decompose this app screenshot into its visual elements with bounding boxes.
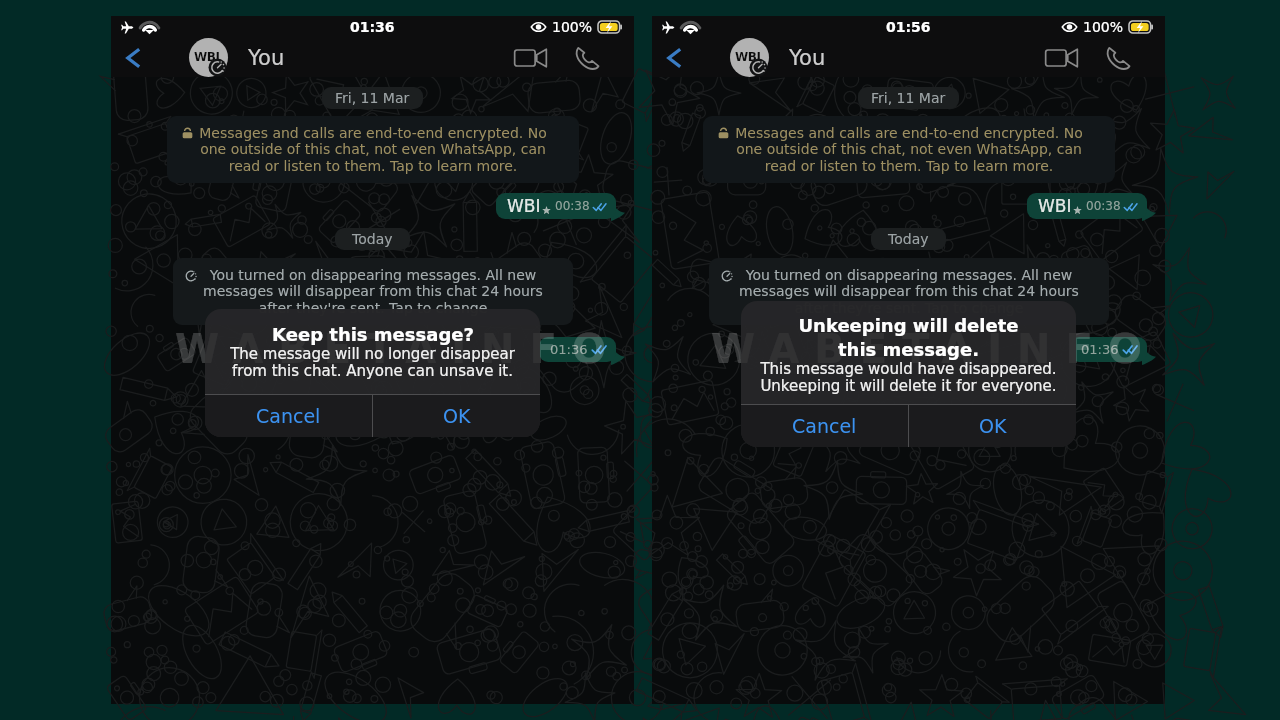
staticText: 01:36 <box>1081 342 1119 357</box>
staticText: Fri, 11 Mar <box>335 90 410 106</box>
staticText: WABETAINFO <box>175 326 621 373</box>
staticText: Messages and calls are end-to-end encryp… <box>199 125 547 174</box>
staticText: WBI <box>1038 196 1072 216</box>
staticText: This message would have disappeared. Unk… <box>760 360 1057 394</box>
staticText: 100% <box>552 19 593 35</box>
staticText: 00:38 <box>555 199 590 213</box>
button[interactable]: Cancel <box>741 405 908 447</box>
staticText: Cancel <box>256 405 321 427</box>
staticText: Today <box>888 231 929 247</box>
staticText: OK <box>443 405 471 427</box>
staticText: You <box>789 46 826 70</box>
staticText: 00:38 <box>1086 199 1121 213</box>
staticText: 100% <box>1083 19 1124 35</box>
staticText: Today <box>352 231 393 247</box>
staticText: Keep this message? <box>272 324 474 345</box>
staticText: Fri, 11 Mar <box>871 90 946 106</box>
staticText: WBI <box>507 196 541 216</box>
staticText: You turned on disappearing messages. All… <box>739 267 1079 316</box>
staticText: Messages and calls are end-to-end encryp… <box>735 125 1083 174</box>
button[interactable]: Video call <box>1033 38 1089 77</box>
staticText: The message will no longer disappear fro… <box>230 345 515 379</box>
button[interactable]: Back <box>652 38 697 77</box>
staticText: WABETAINFO <box>711 326 1157 373</box>
staticText: WABETAINFO <box>175 326 621 373</box>
staticText: 01:56 <box>886 19 931 35</box>
staticText: Cancel <box>792 415 857 437</box>
button[interactable]: Voice call <box>1089 38 1147 77</box>
staticText: 01:36 <box>550 342 588 357</box>
staticText: WBI <box>194 50 220 64</box>
button[interactable]: Voice call <box>558 38 616 77</box>
button[interactable]: Cancel <box>205 395 372 437</box>
staticText: OK <box>979 415 1007 437</box>
staticText: 01:36 <box>350 19 395 35</box>
button[interactable]: Video call <box>502 38 558 77</box>
button[interactable]: OK <box>373 395 540 437</box>
staticText: WABETAINFO <box>711 326 1157 373</box>
staticText: You <box>248 46 285 70</box>
button[interactable]: Back <box>111 38 156 77</box>
button[interactable]: OK <box>909 405 1076 447</box>
staticText: Unkeeping will delete this message. <box>798 315 1019 360</box>
staticText: You turned on disappearing messages. All… <box>203 267 543 316</box>
staticText: WBI <box>735 50 761 64</box>
